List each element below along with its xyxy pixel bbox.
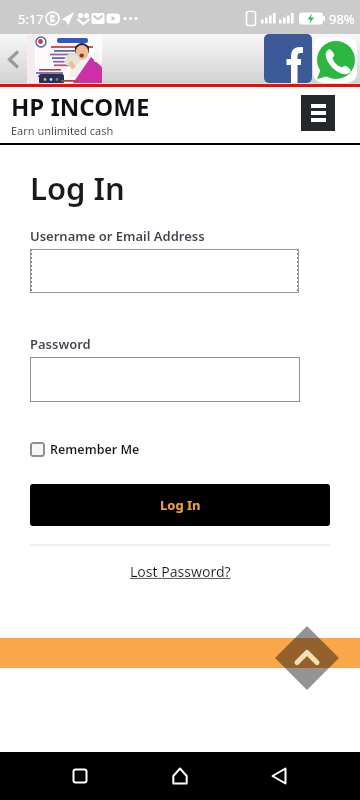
staticText: 5:17 bbox=[18, 10, 44, 28]
button[interactable] bbox=[166, 762, 194, 790]
button[interactable]: Remember Me bbox=[30, 441, 140, 458]
button[interactable] bbox=[313, 37, 357, 83]
staticText: Password bbox=[30, 335, 91, 353]
staticText: Log In bbox=[30, 167, 125, 209]
staticText: HP INCOME bbox=[11, 90, 150, 123]
button[interactable] bbox=[275, 626, 339, 690]
staticText: Username or Email Address bbox=[30, 227, 205, 245]
staticText: Earn unlimited cash bbox=[11, 123, 114, 138]
button[interactable] bbox=[27, 35, 102, 83]
button[interactable]: Log In bbox=[30, 484, 330, 526]
staticText: Log In bbox=[160, 496, 201, 514]
button[interactable] bbox=[301, 95, 335, 131]
staticText: 98% bbox=[329, 10, 355, 28]
button[interactable] bbox=[30, 357, 300, 402]
button[interactable]: Lost Password? bbox=[130, 562, 231, 581]
button[interactable] bbox=[265, 762, 293, 790]
button[interactable] bbox=[30, 249, 299, 293]
button[interactable] bbox=[6, 50, 22, 70]
button[interactable] bbox=[264, 34, 312, 83]
button[interactable] bbox=[66, 762, 94, 790]
staticText: Remember Me bbox=[50, 441, 140, 458]
